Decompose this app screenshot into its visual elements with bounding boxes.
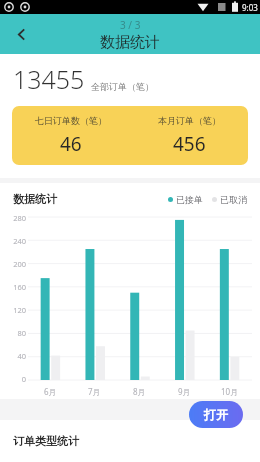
staticText: 10月 [221,386,239,397]
staticText: 3 / 3 [120,18,141,32]
staticText: 七日订单数（笔） [35,115,107,126]
staticText: 数据统计 [13,192,57,206]
staticText: 80 [17,328,26,338]
staticText: 120 [13,305,26,315]
staticText: 160 [13,282,26,292]
staticText: 46 [60,131,82,157]
staticText: 6月 [44,386,57,397]
staticText: 280 [13,213,26,223]
staticText: 订单类型统计 [13,434,79,448]
staticText: 本月订单（笔） [158,115,221,126]
staticText: 打开 [204,407,228,422]
staticText: 9月 [178,386,191,397]
staticText: 0 [21,374,26,384]
staticText: 已接单 [176,194,203,205]
staticText: 9:03 [242,2,258,13]
button[interactable]: 打开 [189,401,243,428]
staticText: 13455 [13,62,85,96]
staticText: 全部订单（笔） [91,81,154,92]
staticText: 数据统计 [100,33,160,52]
staticText: 456 [173,131,206,157]
button[interactable]: 订单类型统计 [0,420,260,462]
staticText: 40 [17,351,26,361]
staticText: 240 [13,236,26,246]
staticText: 200 [13,259,26,269]
button[interactable]: Back [4,17,38,51]
staticText: 7月 [88,386,101,397]
staticText: 8月 [133,386,146,397]
staticText: 已取消 [220,194,247,205]
